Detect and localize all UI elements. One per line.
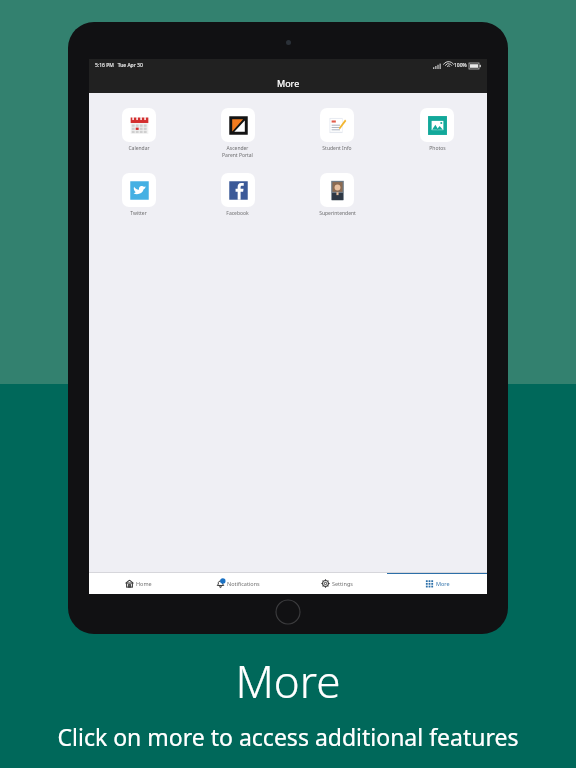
button[interactable]: Ascender Parent Portal (188, 106, 287, 161)
staticText: Photos (429, 145, 446, 152)
button[interactable]: Twitter (89, 171, 188, 219)
button[interactable]: Superintendent (287, 171, 387, 219)
staticText: 5:16 PM Tue Apr 30 (95, 62, 143, 69)
staticText: Student Info (322, 145, 352, 152)
staticText: More (235, 651, 341, 711)
button[interactable]: Calendar (89, 106, 188, 154)
staticText: Click on more to access additional featu… (57, 721, 519, 752)
button[interactable]: Notifications (188, 573, 287, 594)
button[interactable]: Facebook (188, 171, 287, 219)
button[interactable]: Settings (287, 573, 387, 594)
staticText: Superintendent (319, 210, 356, 217)
staticText: Facebook (226, 210, 249, 217)
staticText: Twitter (130, 210, 147, 217)
staticText: More (277, 77, 300, 89)
staticText: 100% (454, 62, 467, 69)
button[interactable]: Home (89, 573, 188, 594)
button[interactable]: Photos (387, 106, 487, 154)
staticText: Home (136, 580, 152, 587)
staticText: Notifications (227, 580, 260, 587)
button[interactable]: Student Info (287, 106, 387, 154)
button[interactable]: More (387, 573, 487, 594)
staticText: More (436, 580, 450, 587)
staticText: Calendar (128, 145, 150, 152)
staticText: Settings (332, 580, 353, 587)
staticText: Ascender Parent Portal (222, 145, 253, 159)
